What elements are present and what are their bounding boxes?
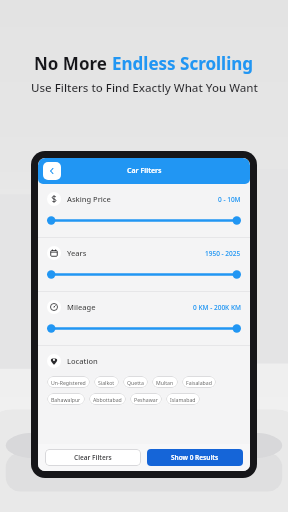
button[interactable]: Range slider xyxy=(47,216,241,225)
staticText: Location xyxy=(67,356,98,366)
staticText: Peshawar xyxy=(134,396,158,403)
staticText: Clear Filters xyxy=(74,453,112,462)
staticText: Car Filters xyxy=(127,166,162,176)
staticText: Mileage xyxy=(67,302,96,312)
staticText: Quetta xyxy=(127,379,144,386)
button[interactable]: Mileage xyxy=(38,292,250,345)
staticText: Endless Scrolling xyxy=(112,52,254,75)
button[interactable]: Range slider xyxy=(47,270,241,279)
staticText: 1950 - 2025 xyxy=(205,249,241,258)
staticText: Bahawalpur xyxy=(51,396,81,403)
staticText: Show 0 Results xyxy=(171,453,219,462)
button[interactable]: Clear Filters xyxy=(45,449,141,466)
button[interactable]: Peshawar xyxy=(130,393,162,405)
staticText: No More xyxy=(34,52,112,75)
button[interactable]: Years xyxy=(38,238,250,291)
button[interactable]: Bahawalpur xyxy=(47,393,85,405)
staticText: Un-Registered xyxy=(51,379,86,386)
button[interactable]: Un-Registered xyxy=(47,376,90,388)
staticText: Multan xyxy=(156,379,174,386)
staticText: Sialkot xyxy=(98,379,115,386)
staticText: Years xyxy=(67,248,87,258)
staticText: Asking Price xyxy=(67,194,111,204)
button[interactable]: Back xyxy=(43,162,61,180)
staticText: 0 KM - 200K KM xyxy=(193,303,241,312)
staticText: Abbottabad xyxy=(93,396,122,403)
button[interactable]: Quetta xyxy=(123,376,148,388)
button[interactable]: Range slider xyxy=(47,324,241,333)
staticText: Use Filters to Find Exactly What You Wan… xyxy=(31,80,258,96)
button[interactable]: Abbottabad xyxy=(89,393,126,405)
button[interactable]: Asking Price xyxy=(38,184,250,237)
button[interactable]: Sialkot xyxy=(94,376,119,388)
button[interactable]: Islamabad xyxy=(166,393,200,405)
staticText: Islamabad xyxy=(170,396,196,403)
button[interactable]: Show 0 Results xyxy=(147,449,243,466)
staticText: 0 - 10M xyxy=(218,195,241,204)
button[interactable]: Faisalabad xyxy=(182,376,216,388)
button[interactable]: Multan xyxy=(152,376,178,388)
staticText: Faisalabad xyxy=(186,379,212,386)
